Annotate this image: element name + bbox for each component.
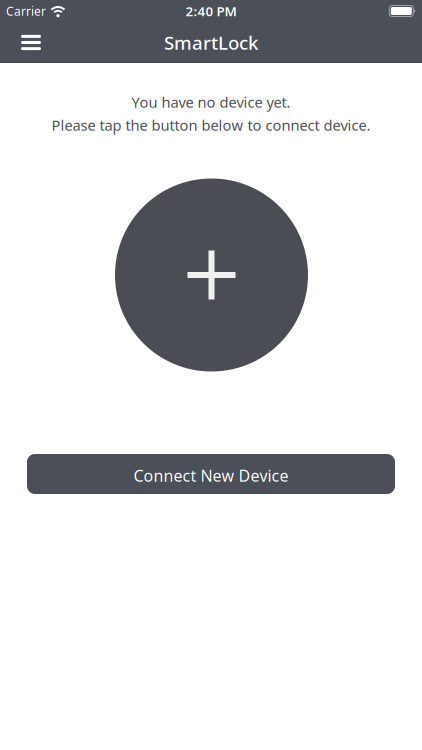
staticText: Carrier <box>6 3 46 19</box>
button[interactable]: Add device <box>115 178 308 371</box>
button[interactable]: Connect New Device <box>27 454 395 494</box>
staticText: SmartLock <box>164 30 258 55</box>
staticText: Please tap the button below to connect d… <box>51 115 370 135</box>
staticText: Connect New Device <box>133 465 288 486</box>
staticText: 2:40 PM <box>185 2 236 20</box>
button[interactable]: Menu <box>10 25 52 60</box>
staticText: You have no device yet. <box>131 92 290 112</box>
